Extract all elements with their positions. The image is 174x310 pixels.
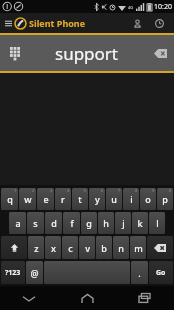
staticText: r	[61, 193, 65, 205]
staticText: c	[68, 242, 73, 254]
button[interactable]: Delete	[147, 236, 173, 259]
staticText: h	[103, 217, 109, 229]
button[interactable]: o	[140, 188, 156, 210]
button[interactable]: g	[81, 212, 97, 234]
button[interactable]: j	[115, 212, 131, 234]
button[interactable]: c	[62, 236, 78, 259]
staticText: @	[30, 267, 39, 279]
button[interactable]: r	[55, 188, 71, 210]
button[interactable]: h	[98, 212, 114, 234]
staticText: 10:20	[154, 2, 172, 12]
staticText: 2	[32, 188, 35, 193]
staticText: m	[134, 242, 143, 254]
staticText: 5	[84, 188, 87, 193]
button[interactable]: s	[27, 212, 44, 234]
staticText: Silent Phone	[29, 17, 86, 29]
staticText: 3	[50, 188, 53, 193]
staticText: d	[51, 217, 57, 229]
button[interactable]: t	[72, 188, 88, 210]
staticText: j	[122, 217, 125, 229]
staticText: 7	[118, 188, 121, 193]
staticText: f	[70, 217, 74, 229]
button[interactable]: Call history	[151, 14, 168, 32]
other: Shift	[10, 243, 19, 252]
staticText: x	[51, 242, 56, 254]
staticText: a	[15, 217, 21, 229]
staticText: v	[85, 242, 90, 254]
staticText: z	[34, 242, 39, 254]
button[interactable]: y	[89, 188, 105, 210]
button[interactable]: @	[26, 261, 43, 284]
button[interactable]: Dialpad	[0, 35, 30, 71]
staticText: o	[145, 193, 151, 205]
button[interactable]: k	[132, 212, 148, 234]
staticText: support	[55, 42, 119, 65]
staticText: Go	[156, 268, 166, 278]
button[interactable]: Menu	[3, 14, 13, 32]
staticText: 0	[169, 188, 172, 193]
staticText: p	[162, 193, 168, 205]
staticText: e	[43, 193, 49, 205]
button[interactable]: l	[149, 212, 165, 234]
staticText: g	[86, 217, 92, 229]
staticText: k	[137, 217, 143, 229]
button[interactable]: f	[63, 212, 80, 234]
button[interactable]: e	[37, 188, 54, 210]
button[interactable]: d	[45, 212, 62, 234]
button[interactable]: v	[79, 236, 95, 259]
button[interactable]: Go	[149, 261, 173, 284]
button[interactable]: n	[113, 236, 129, 259]
staticText: s	[33, 217, 38, 229]
button[interactable]: q	[1, 188, 18, 210]
staticText: w	[24, 193, 32, 205]
staticText: 4G	[128, 5, 134, 10]
button[interactable]: Backspace	[146, 35, 174, 71]
staticText: 1	[14, 188, 17, 193]
staticText: 4	[67, 188, 70, 193]
button[interactable]: z	[28, 236, 44, 259]
staticText: t	[78, 193, 82, 205]
staticText: 8	[135, 188, 138, 193]
button[interactable]: p	[157, 188, 173, 210]
staticText: 6	[101, 188, 104, 193]
staticText: i	[130, 193, 133, 205]
staticText: y	[95, 193, 100, 205]
staticText: l	[156, 217, 159, 229]
staticText: 9	[152, 188, 155, 193]
button[interactable]: Recents	[116, 286, 174, 310]
staticText: .	[138, 267, 141, 279]
button[interactable]: u	[106, 188, 122, 210]
button[interactable]: b	[96, 236, 112, 259]
button[interactable]: a	[9, 212, 26, 234]
button[interactable]: Hide keyboard	[0, 286, 58, 310]
button[interactable]: w	[19, 188, 36, 210]
staticText: u	[111, 193, 117, 205]
button[interactable]: m	[130, 236, 146, 259]
button[interactable]: x	[45, 236, 61, 259]
staticText: n	[118, 242, 124, 254]
button[interactable]: .	[131, 261, 148, 284]
button[interactable]: i	[123, 188, 139, 210]
staticText: ?123	[5, 268, 21, 278]
staticText: b	[101, 242, 107, 254]
button[interactable]: Contacts	[127, 14, 147, 32]
staticText: q	[7, 193, 13, 205]
button[interactable]: ?123	[1, 261, 25, 284]
button[interactable]: Home	[58, 286, 116, 310]
button[interactable]: Shift	[1, 236, 27, 259]
button[interactable]: Space	[44, 261, 130, 284]
